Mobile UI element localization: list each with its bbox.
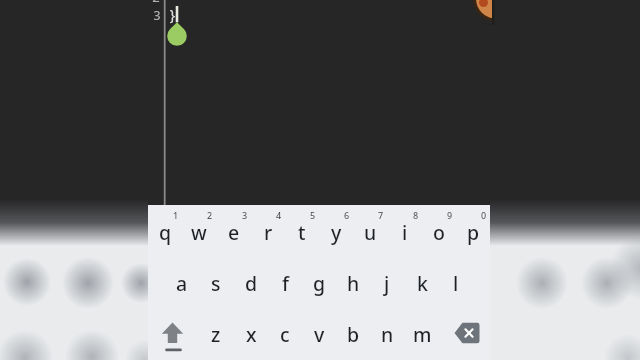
staticText: c <box>280 321 290 348</box>
staticText: 5 <box>310 209 316 221</box>
staticText: n <box>381 321 394 348</box>
staticText: t <box>298 219 306 246</box>
staticText: v <box>314 321 325 348</box>
staticText: h <box>347 270 360 297</box>
staticText: 7 <box>378 209 384 221</box>
staticText: b <box>347 321 360 348</box>
staticText: 6 <box>344 209 350 221</box>
staticText: l <box>453 270 459 297</box>
staticText: j <box>384 270 390 297</box>
staticText: 2 <box>207 209 213 221</box>
staticText: e <box>228 219 240 246</box>
staticText: y <box>331 219 342 246</box>
staticText: k <box>417 270 428 297</box>
staticText: 8 <box>413 209 419 221</box>
staticText: 2 <box>152 0 160 6</box>
staticText: z <box>211 321 221 348</box>
staticText: 0 <box>481 209 487 221</box>
staticText: s <box>211 270 221 297</box>
staticText: p <box>467 219 480 246</box>
staticText: u <box>364 219 377 246</box>
staticText: 3 <box>153 6 161 24</box>
staticText: } <box>168 4 178 24</box>
staticText: 9 <box>447 209 453 221</box>
staticText: d <box>245 270 258 297</box>
staticText: w <box>191 219 207 246</box>
staticText: i <box>402 219 408 246</box>
staticText: r <box>264 219 273 246</box>
staticText: m <box>413 321 432 348</box>
staticText: x <box>246 321 257 348</box>
staticText: f <box>282 270 289 297</box>
staticText: 1 <box>173 209 179 221</box>
staticText: q <box>159 219 172 246</box>
staticText: a <box>176 270 188 297</box>
staticText: 3 <box>242 209 248 221</box>
staticText: g <box>313 270 326 297</box>
staticText: 4 <box>276 209 282 221</box>
staticText: o <box>433 219 445 246</box>
